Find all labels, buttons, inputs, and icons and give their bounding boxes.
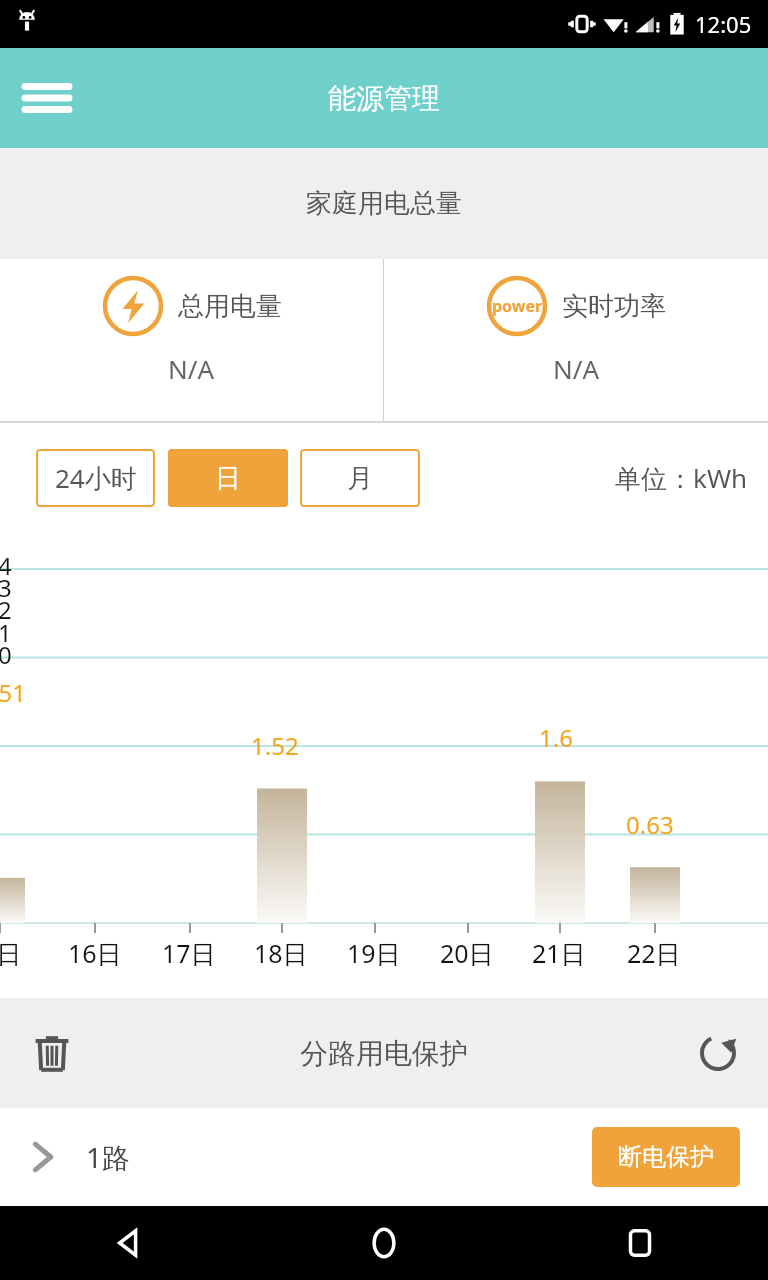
- staticText: 1.6: [539, 721, 573, 754]
- staticText: 16日: [68, 936, 122, 970]
- staticText: 5日: [0, 936, 22, 970]
- staticText: 4: [0, 549, 12, 582]
- staticText: 0.63: [626, 808, 674, 841]
- button[interactable]: Back: [0, 1206, 256, 1280]
- button[interactable]: 总用电量: [0, 259, 383, 421]
- staticText: 1路: [86, 1138, 131, 1176]
- staticText: 能源管理: [328, 81, 440, 116]
- button[interactable]: 月: [300, 449, 420, 507]
- staticText: 12:05: [695, 9, 752, 39]
- button[interactable]: 24小时: [36, 449, 155, 507]
- staticText: 1.52: [251, 729, 299, 762]
- staticText: 月: [347, 462, 373, 495]
- staticText: 1: [0, 616, 12, 649]
- staticText: 家庭用电总量: [306, 187, 462, 220]
- staticText: 20日: [440, 936, 494, 970]
- staticText: 总用电量: [178, 290, 282, 323]
- button[interactable]: Recent apps: [512, 1206, 768, 1280]
- staticText: 3: [0, 571, 12, 604]
- button[interactable]: Delete: [26, 1027, 78, 1079]
- staticText: 22日: [627, 936, 681, 970]
- staticText: 实时功率: [562, 290, 666, 323]
- staticText: power: [492, 295, 543, 317]
- button[interactable]: Home: [256, 1206, 512, 1280]
- button[interactable]: Refresh: [692, 1027, 744, 1079]
- staticText: 21日: [532, 936, 586, 970]
- button[interactable]: 日: [168, 449, 288, 507]
- staticText: 分路用电保护: [300, 1036, 468, 1071]
- staticText: 19日: [347, 936, 401, 970]
- staticText: 断电保护: [618, 1142, 714, 1172]
- staticText: 2: [0, 593, 12, 626]
- button[interactable]: 1路: [0, 1108, 768, 1206]
- button[interactable]: power: [384, 259, 768, 421]
- button[interactable]: 断电保护: [592, 1127, 740, 1187]
- button[interactable]: Menu: [20, 71, 74, 125]
- staticText: N/A: [168, 351, 215, 386]
- staticText: N/A: [553, 351, 600, 386]
- staticText: 17日: [162, 936, 216, 970]
- staticText: 单位：kWh: [615, 460, 748, 496]
- staticText: 日: [215, 462, 241, 495]
- staticText: 0: [0, 638, 12, 671]
- staticText: .51: [0, 676, 26, 709]
- staticText: 18日: [254, 936, 308, 970]
- staticText: 24小时: [55, 460, 137, 496]
